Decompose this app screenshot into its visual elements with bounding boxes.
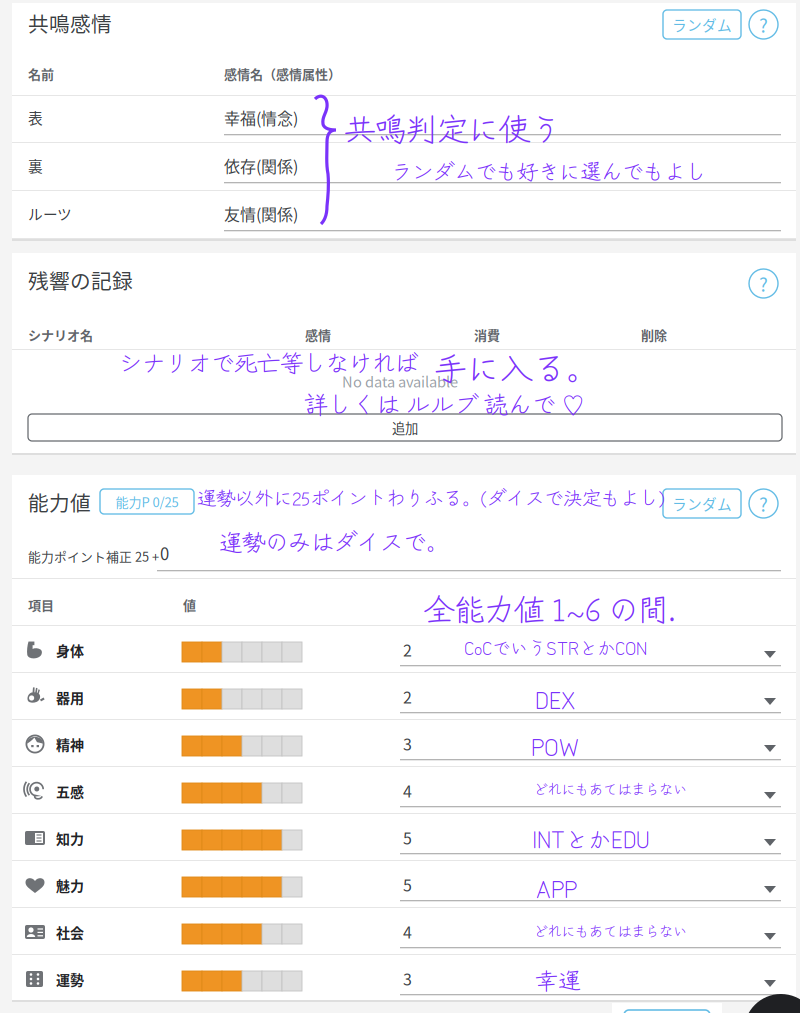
staticText: 共鳴感情: [28, 8, 112, 38]
button[interactable]: Help: [749, 269, 778, 298]
staticText: 削除: [641, 325, 667, 344]
staticText: 4: [403, 920, 412, 943]
staticText: シナリオで死亡等しなければ: [119, 345, 418, 379]
staticText: 身体: [56, 640, 84, 660]
staticText: 運勢以外に25ポイントわりふる。(ダイスで決定もよし): [197, 483, 665, 511]
staticText: 感情: [305, 325, 331, 344]
staticText: 知力: [56, 828, 84, 848]
staticText: 手に入る。: [434, 343, 597, 390]
staticText: 裏: [28, 155, 43, 176]
staticText: 幸福(情念): [224, 106, 298, 129]
staticText: 幸運: [535, 963, 581, 996]
staticText: 3: [403, 967, 412, 990]
staticText: CoCでいうSTRとかCON: [464, 634, 647, 660]
staticText: 運勢: [56, 969, 84, 989]
staticText: 4: [403, 779, 412, 802]
staticText: 能力値: [28, 487, 91, 517]
staticText: ?: [759, 490, 768, 517]
button[interactable]: ランダム: [663, 489, 741, 518]
staticText: 2: [403, 685, 412, 708]
staticText: 能力P 0/25: [115, 492, 178, 511]
staticText: シナリオ名: [28, 325, 93, 344]
staticText: 値: [183, 595, 196, 614]
staticText: 器用: [56, 687, 84, 707]
staticText: 項目: [28, 595, 54, 614]
staticText: 依存(関係): [224, 154, 298, 177]
staticText: 共鳴判定に使う: [344, 105, 561, 150]
staticText: INTとかEDU: [532, 822, 650, 855]
staticText: No data available: [342, 370, 458, 392]
button[interactable]: 追加: [28, 414, 782, 441]
staticText: APP: [536, 871, 577, 905]
staticText: 名前: [28, 64, 54, 83]
staticText: ?: [759, 11, 768, 38]
staticText: ランダム: [672, 14, 732, 35]
button[interactable]: Help: [749, 489, 778, 518]
staticText: 残響の記録: [28, 265, 133, 295]
button[interactable]: Help: [749, 10, 778, 39]
staticText: 表: [28, 107, 43, 128]
staticText: 運勢のみはダイスで。: [219, 524, 448, 558]
staticText: 5: [403, 826, 412, 849]
staticText: ?: [759, 270, 768, 297]
staticText: 追加: [392, 418, 418, 437]
staticText: 五感: [56, 781, 84, 801]
staticText: ルーツ: [28, 203, 72, 224]
staticText: 社会: [56, 922, 84, 942]
staticText: 詳しくは ルルブ 読んで ♡: [304, 386, 584, 420]
staticText: 全能力値 1~6 の間.: [424, 586, 676, 630]
staticText: ランダムでも好きに選んでもよし: [391, 155, 706, 186]
button[interactable]: ランダム: [663, 10, 741, 39]
staticText: ランダム: [672, 493, 732, 514]
staticText: 精神: [56, 734, 84, 754]
staticText: DEX: [535, 682, 575, 716]
staticText: 友情(関係): [224, 202, 298, 225]
staticText: どれにもあてはまらない: [533, 920, 687, 941]
staticText: 0: [160, 541, 169, 565]
staticText: 3: [403, 732, 412, 755]
staticText: 2: [403, 638, 412, 661]
staticText: どれにもあてはまらない: [533, 778, 687, 799]
staticText: 魅力: [56, 875, 84, 895]
staticText: 能力ポイント補正 25 +: [28, 547, 159, 565]
staticText: 感情名（感情属性）: [224, 64, 341, 83]
staticText: POW: [531, 729, 579, 763]
staticText: 5: [403, 873, 412, 896]
staticText: 消費: [474, 325, 500, 344]
